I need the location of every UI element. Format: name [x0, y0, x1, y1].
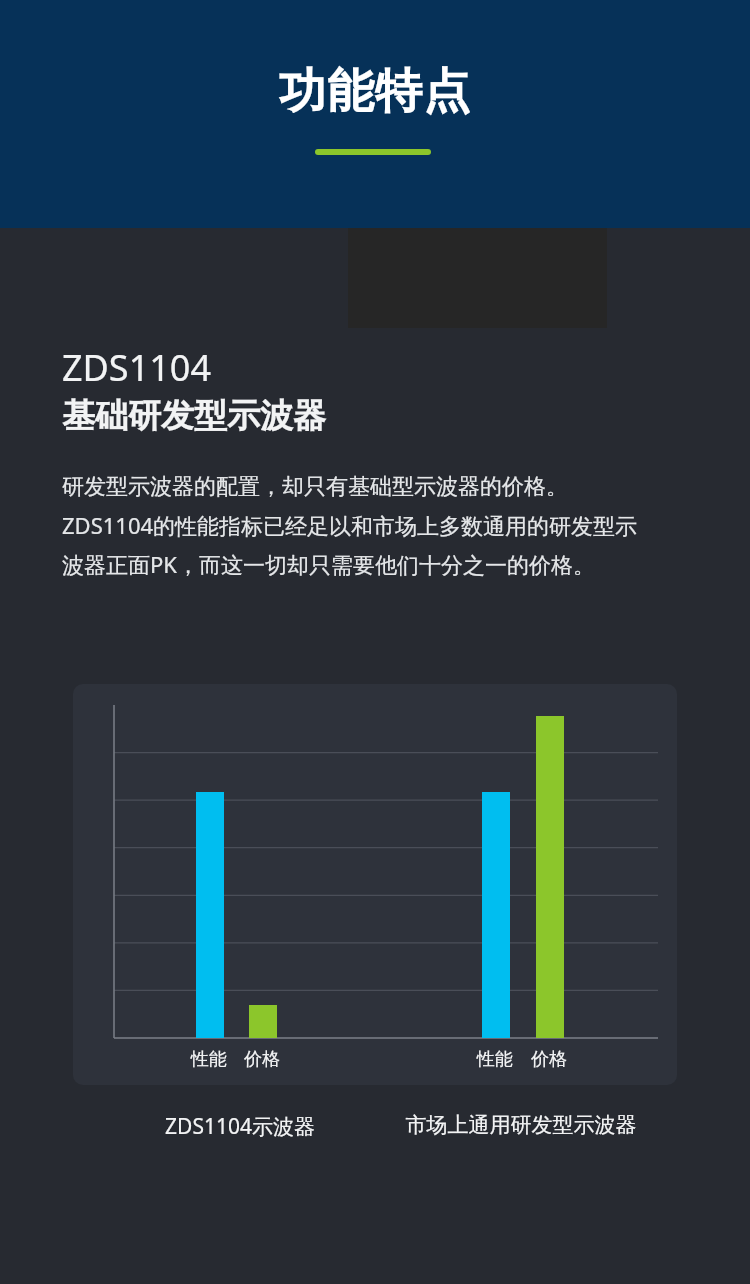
staticText: 功能特点 [0, 62, 750, 121]
staticText: 价格 [531, 1048, 567, 1071]
staticText: 性能 [191, 1048, 227, 1071]
button[interactable]: ZDS1104示波器 [120, 1108, 360, 1145]
staticText: 市场上通用研发型示波器 [390, 1112, 652, 1138]
staticText: 波器正面PK，而这一切却只需要他们十分之一的价格。 [62, 549, 595, 579]
button[interactable]: 功能特点 [0, 0, 750, 228]
staticText: 研发型示波器的配置，却只有基础型示波器的价格。 [62, 473, 568, 501]
staticText: ZDS1104的性能指标已经足以和市场上多数通用的研发型示 [62, 510, 638, 540]
staticText: 性能 [477, 1048, 513, 1071]
button[interactable]: Performance and price comparison bar cha… [73, 684, 677, 1085]
staticText: ZDS1104示波器 [120, 1112, 360, 1141]
staticText: 基础研发型示波器 [62, 395, 326, 437]
staticText: ZDS1104 [62, 343, 212, 392]
staticText: 价格 [244, 1048, 280, 1071]
button[interactable]: 市场上通用研发型示波器 [390, 1108, 652, 1142]
